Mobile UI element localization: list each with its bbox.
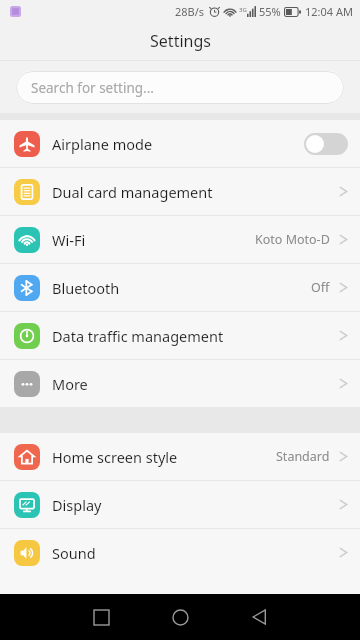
staticText: Off [311,279,330,296]
staticText: Bluetooth [52,278,120,298]
staticText: Data traffic management [52,326,224,346]
staticText: Wi-Fi [52,230,86,250]
button[interactable]: Airplane mode toggle, off [304,133,348,155]
staticText: Search for setting... [31,79,154,97]
button[interactable]: Home [157,594,203,640]
staticText: Settings [150,30,211,52]
staticText: Airplane mode [52,134,153,154]
staticText: Sound [52,543,96,563]
staticText: 12:04 AM [305,4,353,19]
staticText: Display [52,495,102,515]
button[interactable]: Search for setting... [16,71,344,104]
staticText: Dual card management [52,182,213,202]
staticText: 3G [239,6,247,14]
staticText: Standard [276,448,330,465]
button[interactable]: Bluetooth [0,264,360,311]
button[interactable]: Home screen style [0,433,360,480]
button[interactable]: Dual card management [0,168,360,215]
button[interactable]: Airplane mode [0,120,360,167]
staticText: 28B/s [175,4,205,19]
button[interactable]: Back [236,594,282,640]
button[interactable]: More [0,360,360,407]
staticText: Home screen style [52,447,178,467]
button[interactable]: Wi-Fi [0,216,360,263]
staticText: Koto Moto-D [255,231,330,248]
button[interactable]: Display [0,481,360,528]
button[interactable]: Data traffic management [0,312,360,359]
button[interactable]: Sound [0,529,360,576]
staticText: More [52,374,88,394]
button[interactable]: Recents [78,594,124,640]
staticText: 55% [259,4,281,19]
